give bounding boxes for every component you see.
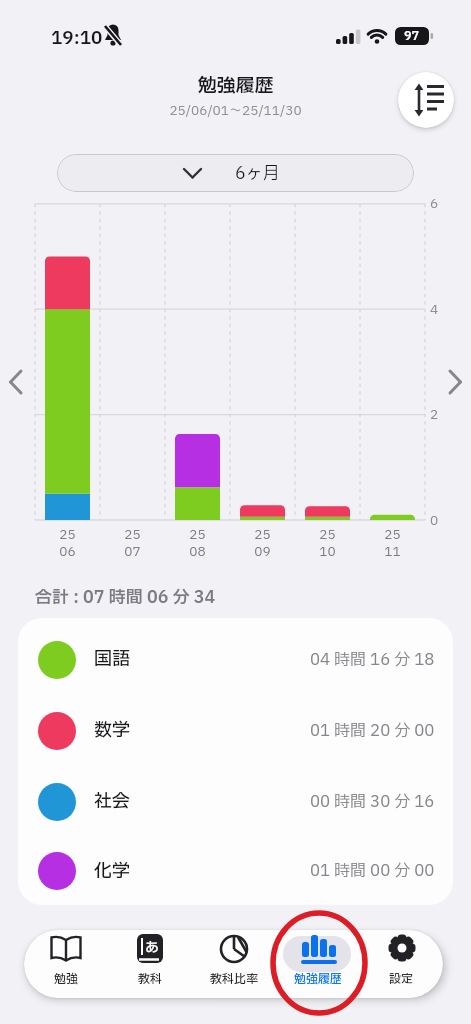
staticText: 教科比率 (210, 970, 259, 988)
button[interactable]: 国語 (18, 624, 453, 695)
staticText: 19:10 (51, 25, 103, 52)
button[interactable]: 勉強 (24, 930, 108, 998)
staticText: 設定 (389, 970, 414, 988)
staticText: 勉強履歴 (197, 72, 274, 100)
button[interactable] (398, 72, 454, 128)
button[interactable] (2, 364, 32, 400)
staticText: 25 06 (59, 525, 76, 562)
button[interactable]: 化学 (18, 837, 453, 905)
staticText: 97 (404, 27, 420, 45)
button[interactable]: 6ヶ月 (57, 154, 414, 192)
staticText: 25 10 (319, 525, 336, 562)
staticText: 00 時間 30 分 16 (310, 790, 435, 814)
button[interactable] (439, 364, 469, 400)
button[interactable]: 設定 (360, 930, 443, 998)
button[interactable]: 数学 (18, 695, 453, 766)
staticText: 2 (430, 405, 439, 424)
staticText: 6ヶ月 (235, 161, 280, 186)
staticText: 25 08 (189, 525, 206, 562)
staticText: 化学 (94, 858, 130, 885)
button[interactable]: あ (108, 930, 192, 998)
staticText: 社会 (94, 788, 130, 815)
staticText: 01 時間 20 分 00 (310, 719, 435, 743)
button[interactable]: 勉強履歴 (276, 930, 360, 998)
staticText: 25 11 (384, 525, 401, 562)
staticText: 25 09 (254, 525, 271, 562)
staticText: 勉強 (54, 970, 79, 988)
staticText: 国語 (94, 646, 130, 673)
staticText: 25/06/01～25/11/30 (169, 101, 302, 120)
staticText: 教科 (138, 970, 163, 988)
staticText: 合計 : 07 時間 06 分 34 (35, 585, 216, 610)
staticText: 0 (430, 511, 439, 530)
staticText: あ (145, 937, 159, 958)
staticText: 勉強履歴 (294, 970, 343, 988)
staticText: 04 時間 16 分 18 (310, 648, 435, 672)
button[interactable]: 教科比率 (192, 930, 276, 998)
button[interactable]: 社会 (18, 766, 453, 837)
staticText: 25 07 (124, 525, 141, 562)
staticText: 数学 (94, 717, 130, 744)
staticText: 4 (430, 300, 439, 319)
staticText: 6 (430, 194, 439, 213)
staticText: 01 時間 00 分 00 (310, 859, 435, 883)
